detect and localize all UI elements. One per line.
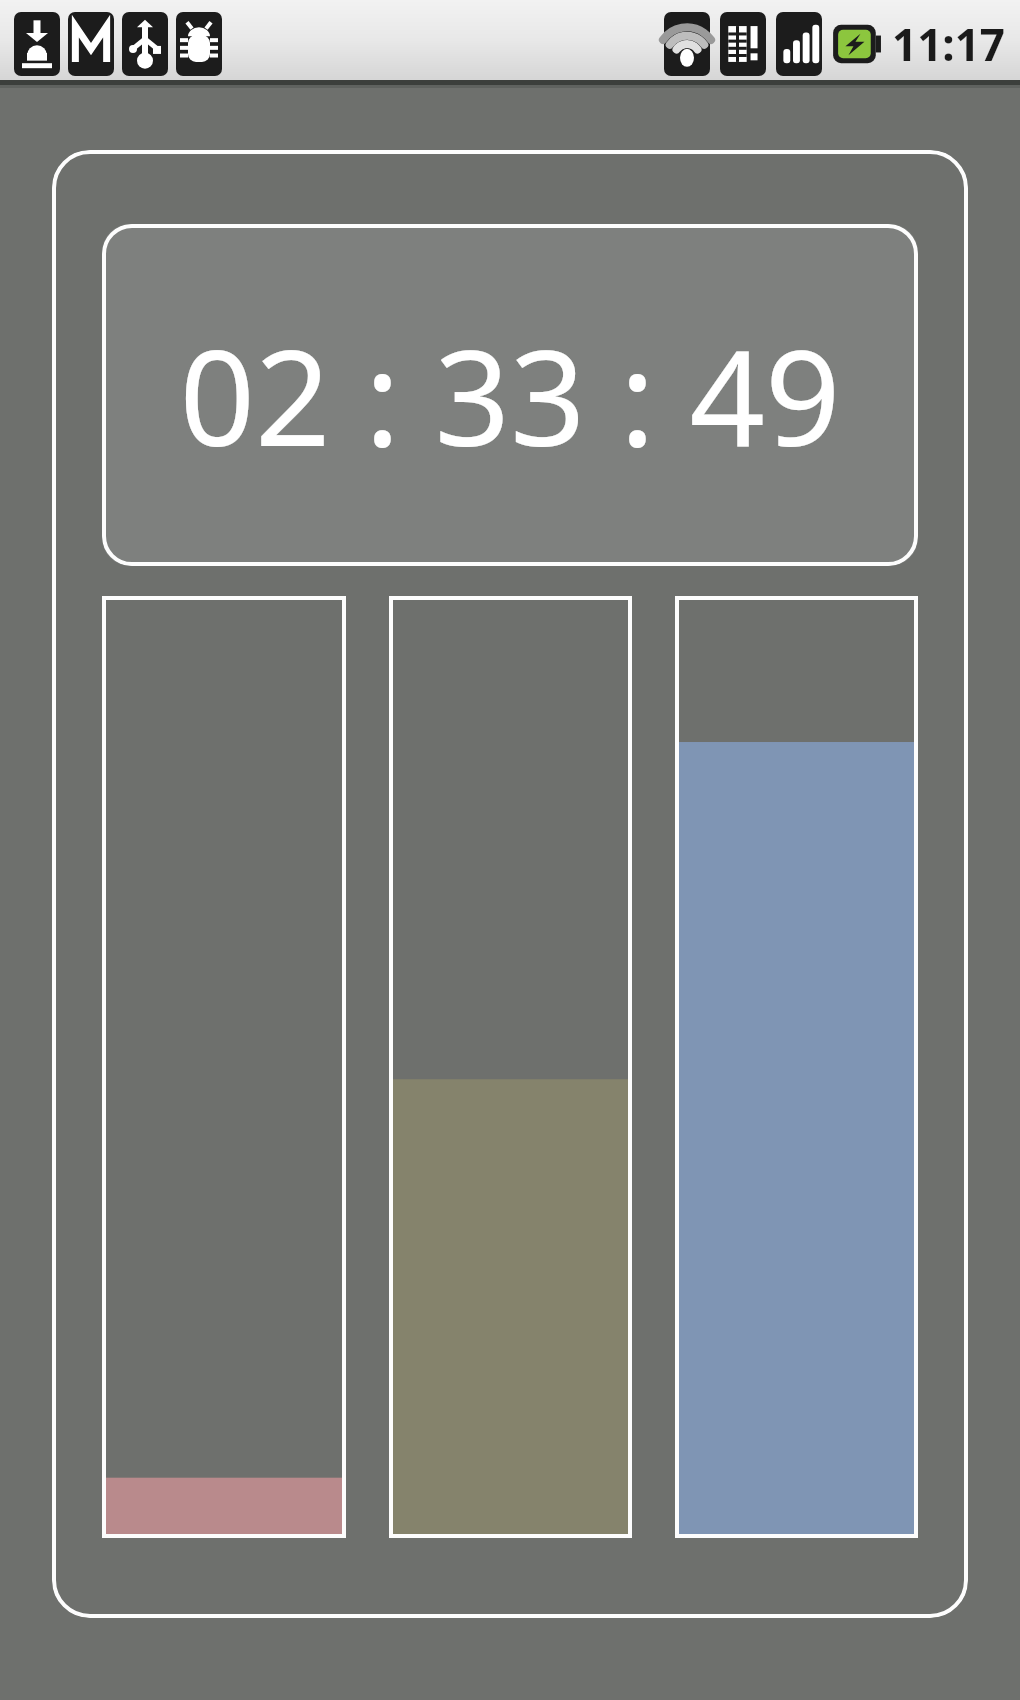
button[interactable]: Red gauge xyxy=(102,596,346,1538)
staticText: 02 : 33 : 49 xyxy=(179,305,841,485)
staticText: 11:17 xyxy=(892,14,1006,74)
button[interactable]: Olive gauge xyxy=(389,596,632,1538)
button[interactable]: 02 : 33 : 49 xyxy=(102,224,918,566)
button[interactable]: 02 : 33 : 49 xyxy=(52,150,968,1618)
button[interactable]: Blue gauge xyxy=(675,596,918,1538)
